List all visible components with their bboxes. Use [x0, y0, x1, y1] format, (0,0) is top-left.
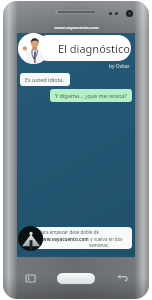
button[interactable]: Y dígame… ¿qué me receta? [50, 89, 132, 102]
button[interactable]: Es usted idiota. [20, 73, 70, 86]
button[interactable]: Back [115, 271, 129, 285]
staticText: y vuelva en dos semanas [89, 236, 129, 248]
button[interactable]: Para empezar dese doble de [33, 227, 132, 249]
button[interactable]: Avatar [18, 33, 49, 64]
staticText: El diagnóstico [58, 41, 130, 56]
button[interactable]: El diagnóstico [35, 35, 131, 61]
button[interactable]: Menu [23, 271, 37, 285]
button[interactable]: Home [57, 273, 95, 284]
staticText: www.vayacuento.com [39, 236, 89, 242]
staticText: Y dígame… ¿qué me receta? [55, 92, 127, 99]
staticText: Para empezar dese doble de [39, 229, 99, 235]
staticText: Es usted idiota. [25, 76, 65, 83]
staticText: www.vayacuento.com [54, 25, 99, 30]
button[interactable]: Sender avatar [18, 226, 43, 251]
staticText: by Oskar [109, 63, 130, 70]
